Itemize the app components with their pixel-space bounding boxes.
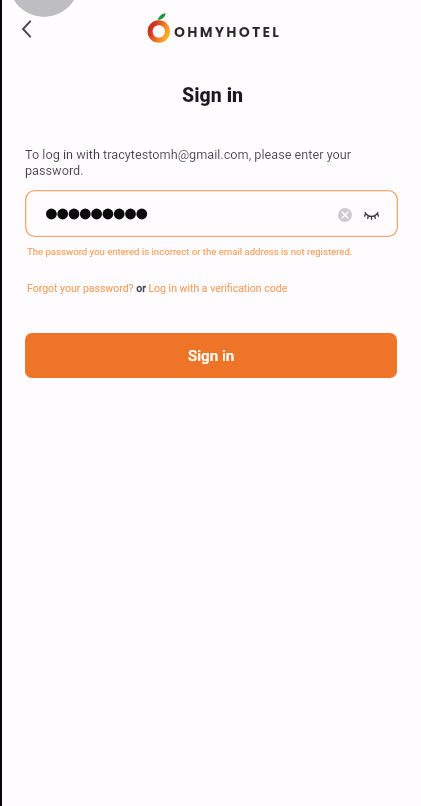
staticText: Sign in xyxy=(188,347,235,365)
staticText: To log in with tracytestomh@gmail.com, p… xyxy=(25,147,365,178)
button[interactable]: Back xyxy=(8,10,46,48)
button[interactable]: Clear text xyxy=(332,202,358,228)
staticText: OHMYHOTEL xyxy=(174,22,282,42)
button[interactable]: Show password xyxy=(358,202,384,228)
button[interactable]: Clear text xyxy=(25,190,398,237)
button[interactable]: Sign in xyxy=(25,333,397,378)
staticText: Sign in xyxy=(5,84,420,107)
button[interactable]: Forgot your password? or Log in with a v… xyxy=(27,282,288,294)
staticText: The password you entered is incorrect or… xyxy=(27,246,353,257)
